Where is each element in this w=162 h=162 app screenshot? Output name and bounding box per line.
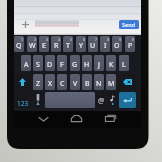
staticText: T — [66, 41, 70, 51]
button[interactable]: C — [57, 74, 67, 90]
button[interactable]: S — [33, 55, 43, 71]
staticText: 5 — [70, 37, 73, 42]
staticText: B — [85, 79, 90, 89]
button[interactable]: H — [82, 55, 92, 71]
button[interactable]: G — [70, 55, 80, 71]
button[interactable]: 8 — [100, 36, 110, 52]
staticText: H — [84, 60, 90, 70]
staticText: N — [96, 79, 102, 89]
button[interactable]: Enter — [119, 92, 136, 108]
button[interactable]: 6 — [76, 36, 86, 52]
staticText: Q — [16, 41, 22, 51]
button[interactable]: 5 — [63, 36, 73, 52]
staticText: Y — [79, 41, 83, 51]
button[interactable]: M — [106, 74, 116, 90]
staticText: 0 — [132, 37, 135, 42]
staticText: E — [42, 41, 46, 51]
staticText: 123 — [17, 99, 29, 108]
staticText: 6 — [83, 37, 86, 42]
button[interactable]: L — [119, 55, 129, 71]
button[interactable]: Space — [45, 92, 95, 108]
button[interactable]: D — [45, 55, 55, 71]
staticText: W — [29, 41, 36, 51]
staticText: K — [109, 60, 114, 70]
button[interactable]: Add attachment — [18, 17, 33, 32]
button[interactable]: Recent apps — [102, 111, 119, 128]
staticText: U — [90, 41, 96, 51]
staticText: I — [104, 41, 107, 51]
button[interactable]: at — [96, 92, 106, 108]
button[interactable]: 3 — [39, 36, 49, 52]
staticText: A — [24, 60, 29, 70]
button[interactable]: J — [94, 55, 104, 71]
button[interactable]: V — [70, 74, 80, 90]
staticText: O — [114, 41, 120, 51]
button[interactable]: B — [82, 74, 92, 90]
button[interactable]: X — [45, 74, 55, 90]
button[interactable] — [35, 19, 79, 29]
button[interactable]: N — [94, 74, 104, 90]
button[interactable]: Back — [35, 111, 52, 128]
staticText: G — [72, 60, 78, 70]
button[interactable]: shift — [14, 74, 31, 90]
staticText: V — [73, 79, 78, 89]
button[interactable]: K — [106, 55, 116, 71]
staticText: 2 — [34, 37, 37, 42]
staticText: M — [108, 79, 115, 89]
staticText: 3 — [46, 37, 49, 42]
staticText: S — [36, 60, 40, 70]
staticText: @ — [98, 96, 105, 106]
button[interactable]: Home — [68, 111, 85, 128]
button[interactable]: F — [57, 55, 67, 71]
staticText: 4 — [58, 37, 61, 42]
staticText: 1 — [21, 37, 24, 42]
staticText: Z — [36, 79, 41, 89]
button[interactable]: A — [21, 55, 31, 71]
button[interactable]: note — [108, 92, 118, 108]
button[interactable]: 1 — [14, 36, 24, 52]
staticText: D — [47, 60, 53, 70]
staticText: J — [98, 60, 100, 70]
button[interactable]: 0 — [125, 36, 135, 52]
staticText: C — [60, 79, 65, 89]
staticText: 9 — [119, 37, 122, 42]
button[interactable]: 4 — [51, 36, 61, 52]
staticText: 7 — [95, 37, 98, 42]
button[interactable]: mic — [33, 92, 43, 108]
button[interactable]: bksp — [119, 74, 136, 90]
button[interactable]: Z — [33, 74, 43, 90]
button[interactable]: Send — [119, 20, 139, 29]
button[interactable]: 123 — [14, 92, 31, 108]
button[interactable]: 2 — [27, 36, 37, 52]
staticText: Send — [122, 21, 136, 28]
staticText: 8 — [107, 37, 110, 42]
staticText: P — [128, 41, 133, 51]
staticText: R — [54, 41, 59, 51]
staticText: F — [60, 60, 64, 70]
staticText: X — [48, 79, 53, 89]
button[interactable]: 9 — [112, 36, 122, 52]
staticText: L — [122, 60, 126, 70]
button[interactable]: 7 — [88, 36, 98, 52]
